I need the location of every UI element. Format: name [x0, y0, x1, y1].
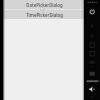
- button[interactable]: TimePickerDialog: [3, 10, 84, 19]
- button[interactable]: Emulator controls: [85, 0, 100, 100]
- button[interactable]: DatePickerDialog: [3, 0, 84, 9]
- staticText: DatePickerDialog: [26, 2, 63, 8]
- staticText: TimePickerDialog: [26, 12, 63, 18]
